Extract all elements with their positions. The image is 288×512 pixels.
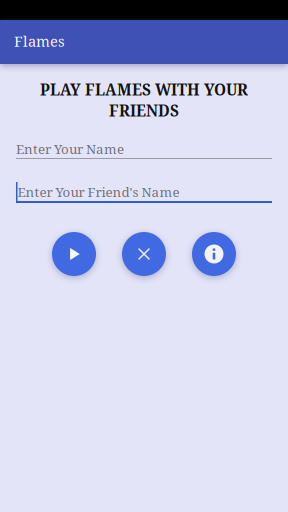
staticText: Enter Your Friend's Name <box>17 183 179 201</box>
button[interactable]: Clear <box>122 232 166 276</box>
button[interactable]: Info <box>192 232 236 276</box>
staticText: Enter Your Name <box>16 140 124 158</box>
staticText: PLAY FLAMES WITH YOUR <box>40 79 248 100</box>
staticText: Flames <box>14 31 65 51</box>
button[interactable]: Enter Your Name <box>16 129 272 159</box>
button[interactable]: Enter Your Friend's Name <box>16 173 272 203</box>
button[interactable]: Play <box>52 232 96 276</box>
staticText: FRIENDS <box>109 100 179 121</box>
